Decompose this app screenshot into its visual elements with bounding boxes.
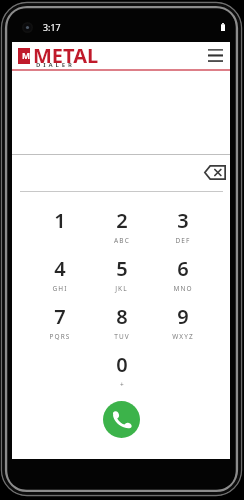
staticText: 8 — [116, 303, 128, 330]
staticText: 2 — [116, 207, 128, 234]
staticText: DIALER — [36, 61, 75, 69]
staticText: 3 — [177, 207, 189, 234]
staticText: PQRS — [49, 332, 71, 341]
button[interactable]: 7 — [29, 299, 91, 347]
button[interactable]: Backspace — [199, 159, 231, 185]
staticText: 4 — [54, 255, 66, 282]
staticText: 5 — [116, 255, 128, 282]
staticText: 9 — [177, 303, 189, 330]
button[interactable]: 1 — [29, 203, 91, 251]
staticText: TUV — [114, 332, 130, 341]
staticText: 7 — [54, 303, 66, 330]
button[interactable]: Menu — [201, 42, 230, 69]
button[interactable]: 9 — [152, 299, 213, 347]
staticText: MNO — [173, 284, 193, 293]
staticText: METAL — [33, 42, 99, 69]
button[interactable]: 2 — [91, 203, 152, 251]
staticText: DEF — [175, 236, 191, 245]
button[interactable]: 8 — [91, 299, 152, 347]
staticText: + — [120, 380, 125, 389]
staticText: 0 — [116, 351, 128, 378]
staticText: 1 — [54, 207, 66, 234]
button[interactable]: 4 — [29, 251, 91, 299]
button[interactable]: 6 — [152, 251, 213, 299]
button[interactable]: 0 — [91, 347, 152, 395]
staticText: 3:17 — [43, 22, 61, 34]
staticText: GHI — [52, 284, 68, 293]
button[interactable]: 3 — [152, 203, 213, 251]
staticText: 6 — [177, 255, 189, 282]
staticText: ABC — [114, 236, 130, 245]
staticText: WXYZ — [172, 332, 194, 341]
button[interactable]: 5 — [91, 251, 152, 299]
staticText: JKL — [115, 284, 128, 293]
button[interactable]: Call — [103, 401, 140, 438]
staticText: M — [22, 50, 31, 62]
